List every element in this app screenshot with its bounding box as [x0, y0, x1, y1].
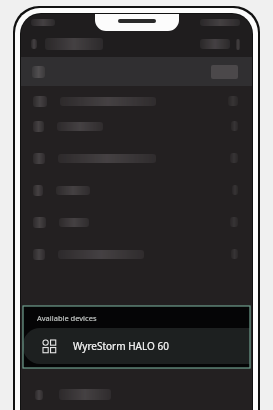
staticText: WyreStorm HALO 60: [73, 339, 169, 353]
button[interactable]: [21, 142, 252, 174]
button[interactable]: [21, 57, 252, 86]
button[interactable]: [21, 174, 252, 206]
staticText: Available devices: [37, 313, 97, 323]
button[interactable]: [21, 92, 252, 110]
button[interactable]: [21, 238, 252, 270]
button[interactable]: WyreStorm HALO 60: [23, 328, 250, 364]
button[interactable]: [21, 206, 252, 238]
button[interactable]: [21, 110, 252, 142]
